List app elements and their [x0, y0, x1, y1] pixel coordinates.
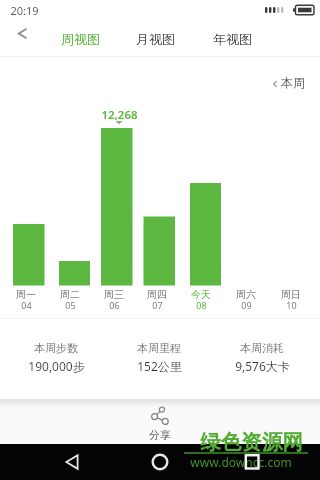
- staticText: 152公里: [137, 358, 182, 374]
- staticText: 10: [286, 299, 297, 311]
- button[interactable]: [40, 444, 104, 480]
- staticText: www.downcc.com: [190, 454, 292, 470]
- staticText: 190,000步: [28, 358, 85, 374]
- staticText: 本周步数: [34, 341, 78, 355]
- staticText: 本周消耗: [240, 341, 284, 355]
- button[interactable]: 周视图: [57, 22, 103, 55]
- button[interactable]: 本周: [262, 72, 312, 92]
- staticText: 本周里程: [137, 341, 181, 355]
- staticText: 07: [152, 299, 163, 311]
- staticText: 分享: [149, 428, 171, 442]
- staticText: 周六: [236, 288, 256, 301]
- staticText: 9,576大卡: [235, 358, 290, 374]
- staticText: 09: [241, 299, 252, 311]
- staticText: 05: [65, 299, 76, 311]
- staticText: 周二: [60, 288, 80, 301]
- staticText: 本周: [281, 75, 305, 90]
- staticText: 周视图: [61, 31, 100, 47]
- staticText: 周日: [281, 288, 301, 301]
- staticText: 周三: [104, 288, 124, 301]
- staticText: 周四: [147, 288, 167, 301]
- button[interactable]: 年视图: [209, 22, 255, 55]
- staticText: 今天: [191, 288, 211, 301]
- staticText: 周一: [16, 288, 36, 301]
- staticText: 06: [109, 299, 120, 311]
- staticText: 年视图: [213, 31, 252, 47]
- button[interactable]: [128, 444, 192, 480]
- button[interactable]: [6, 22, 38, 45]
- button[interactable]: 分享: [138, 400, 182, 444]
- staticText: 12,268: [101, 107, 138, 121]
- staticText: 20:19: [10, 3, 39, 18]
- staticText: 绿色资源网: [200, 429, 303, 455]
- staticText: 月视图: [136, 31, 175, 47]
- button[interactable]: 月视图: [132, 22, 178, 55]
- staticText: 04: [21, 299, 32, 311]
- button[interactable]: [220, 444, 284, 480]
- staticText: 08: [196, 299, 207, 311]
